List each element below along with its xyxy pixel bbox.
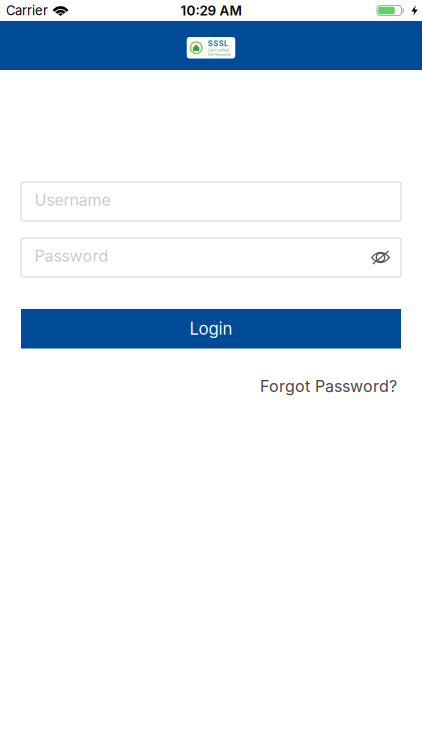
button[interactable]: Login <box>21 309 401 348</box>
staticText: 10:29 AM <box>180 2 241 19</box>
button[interactable]: Forgot Password? <box>260 376 397 396</box>
staticText: Password <box>34 246 108 266</box>
staticText: SSSL <box>208 39 228 48</box>
staticText: Carrier <box>6 3 48 18</box>
staticText: Username <box>34 190 110 210</box>
staticText: Login <box>189 319 232 339</box>
staticText: Get Certified. <box>208 48 230 52</box>
staticText: Forgot Password? <box>260 376 397 396</box>
button[interactable]: Show password <box>361 238 400 277</box>
staticText: Get Awesome. <box>208 52 232 57</box>
